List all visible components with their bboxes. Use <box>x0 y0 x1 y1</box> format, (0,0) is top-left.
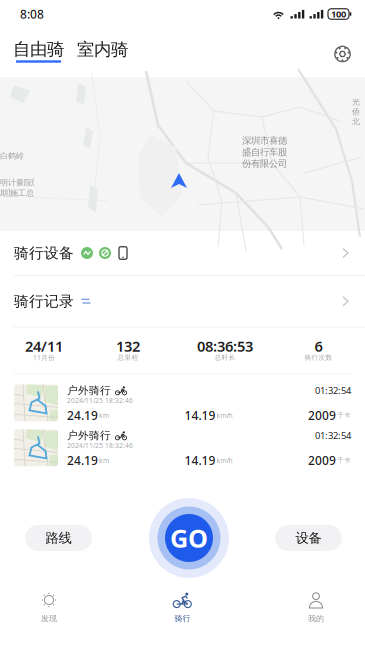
staticText: 2009 <box>308 452 336 468</box>
staticText: 骑行设备 <box>14 244 74 262</box>
staticText: 14.19 <box>184 407 215 423</box>
button[interactable]: 户外骑行 <box>0 425 365 470</box>
staticText: GO <box>170 521 208 555</box>
button[interactable]: 骑行记录 <box>0 276 365 327</box>
staticText: 24/11 <box>25 336 63 356</box>
staticText: 我的 <box>308 614 324 623</box>
staticText: 8:08 <box>20 6 44 22</box>
button[interactable]: 户外骑行 <box>0 380 365 425</box>
staticText: 路线 <box>45 530 71 546</box>
staticText: 明计量院( 期)施工总 <box>0 177 34 198</box>
staticText: 总时长 <box>214 353 235 362</box>
staticText: 总里程 <box>117 353 138 362</box>
staticText: 千卡 <box>337 456 351 464</box>
staticText: 08:36:53 <box>197 336 253 356</box>
staticText: 室内骑 <box>77 39 128 60</box>
staticText: 自由骑 <box>13 39 64 60</box>
button[interactable]: 自由骑 <box>13 38 64 66</box>
staticText: 24.19 <box>67 407 98 423</box>
staticText: 11月份 <box>33 353 55 362</box>
button[interactable]: 我的 <box>267 592 365 650</box>
button[interactable]: 室内骑 <box>64 40 128 64</box>
staticText: 2024/11/25 18:32:46 <box>67 396 133 405</box>
staticText: km/h <box>216 411 232 420</box>
staticText: 14.19 <box>184 452 215 468</box>
button[interactable]: 发现 <box>0 592 98 650</box>
staticText: 132 <box>116 336 140 356</box>
button[interactable]: 设备 <box>275 525 342 551</box>
staticText: 2009 <box>308 407 336 423</box>
button[interactable]: 骑行 <box>133 592 231 650</box>
staticText: km <box>99 456 109 465</box>
staticText: 2024/11/25 18:32:46 <box>67 441 133 450</box>
staticText: 设备 <box>295 530 321 546</box>
staticText: 千卡 <box>337 411 351 419</box>
button[interactable]: 设置 <box>334 42 351 62</box>
staticText: 白鹤岭 <box>0 151 24 161</box>
staticText: 01:32:54 <box>315 429 351 442</box>
staticText: 户外骑行 <box>67 384 111 397</box>
staticText: 光 侨 北 <box>352 97 360 126</box>
staticText: 深圳市喜德 盛自行车股 份有限公司 <box>242 135 287 169</box>
staticText: 骑行记录 <box>14 292 74 310</box>
staticText: 骑行 <box>174 614 190 623</box>
button[interactable]: 路线 <box>25 525 92 551</box>
button[interactable]: 骑行设备 <box>0 231 365 275</box>
staticText: 发现 <box>41 614 57 623</box>
staticText: km <box>99 411 109 420</box>
staticText: 6 <box>314 336 322 356</box>
staticText: 100 <box>331 8 346 20</box>
staticText: 户外骑行 <box>67 429 111 442</box>
button[interactable]: GO <box>149 498 229 578</box>
staticText: 骑行次数 <box>304 353 332 362</box>
staticText: 01:32:54 <box>315 384 351 397</box>
staticText: 24.19 <box>67 452 98 468</box>
staticText: km/h <box>216 456 232 465</box>
